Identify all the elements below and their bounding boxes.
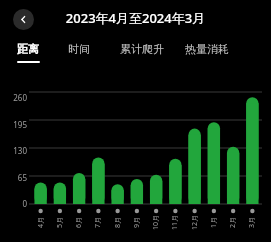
staticText: 11月 (170, 214, 180, 230)
staticText: 5月 (55, 216, 65, 228)
button[interactable]: 时间 (68, 42, 90, 56)
staticText: 0 (22, 198, 27, 209)
staticText: 1月 (209, 216, 219, 228)
staticText: 10月 (151, 214, 161, 230)
staticText: 2月 (228, 216, 238, 228)
staticText: 65 (17, 172, 27, 183)
button[interactable]: 距离 (17, 42, 39, 56)
staticText: 距离 (17, 42, 39, 56)
staticText: 3月 (247, 216, 257, 228)
staticText: 9月 (132, 216, 142, 228)
staticText: 4月 (36, 216, 46, 228)
staticText: 热量消耗 (185, 42, 229, 56)
staticText: 7月 (93, 216, 103, 228)
staticText: 260 (13, 92, 27, 103)
staticText: 累计爬升 (120, 42, 164, 56)
staticText: 195 (13, 119, 27, 130)
button[interactable]: Back (13, 9, 34, 30)
staticText: 8月 (113, 216, 123, 228)
staticText: 130 (13, 145, 27, 156)
staticText: 6月 (74, 216, 84, 228)
button[interactable]: 热量消耗 (185, 42, 229, 56)
staticText: 12月 (190, 214, 200, 230)
staticText: 2023年4月至2024年3月 (0, 9, 271, 27)
button[interactable]: 累计爬升 (120, 42, 164, 56)
staticText: 时间 (68, 42, 90, 56)
